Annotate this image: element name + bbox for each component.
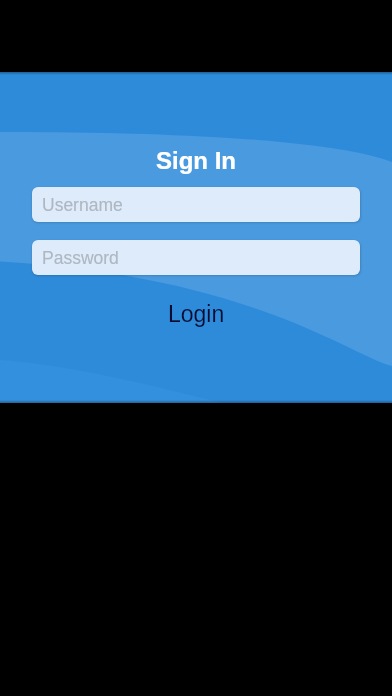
- button[interactable]: Password: [32, 240, 360, 275]
- staticText: Password: [42, 248, 119, 268]
- staticText: Sign In: [156, 147, 236, 174]
- button[interactable]: Username: [32, 187, 360, 222]
- button[interactable]: Login: [32, 292, 360, 334]
- staticText: Username: [42, 195, 123, 215]
- staticText: Login: [168, 301, 225, 327]
